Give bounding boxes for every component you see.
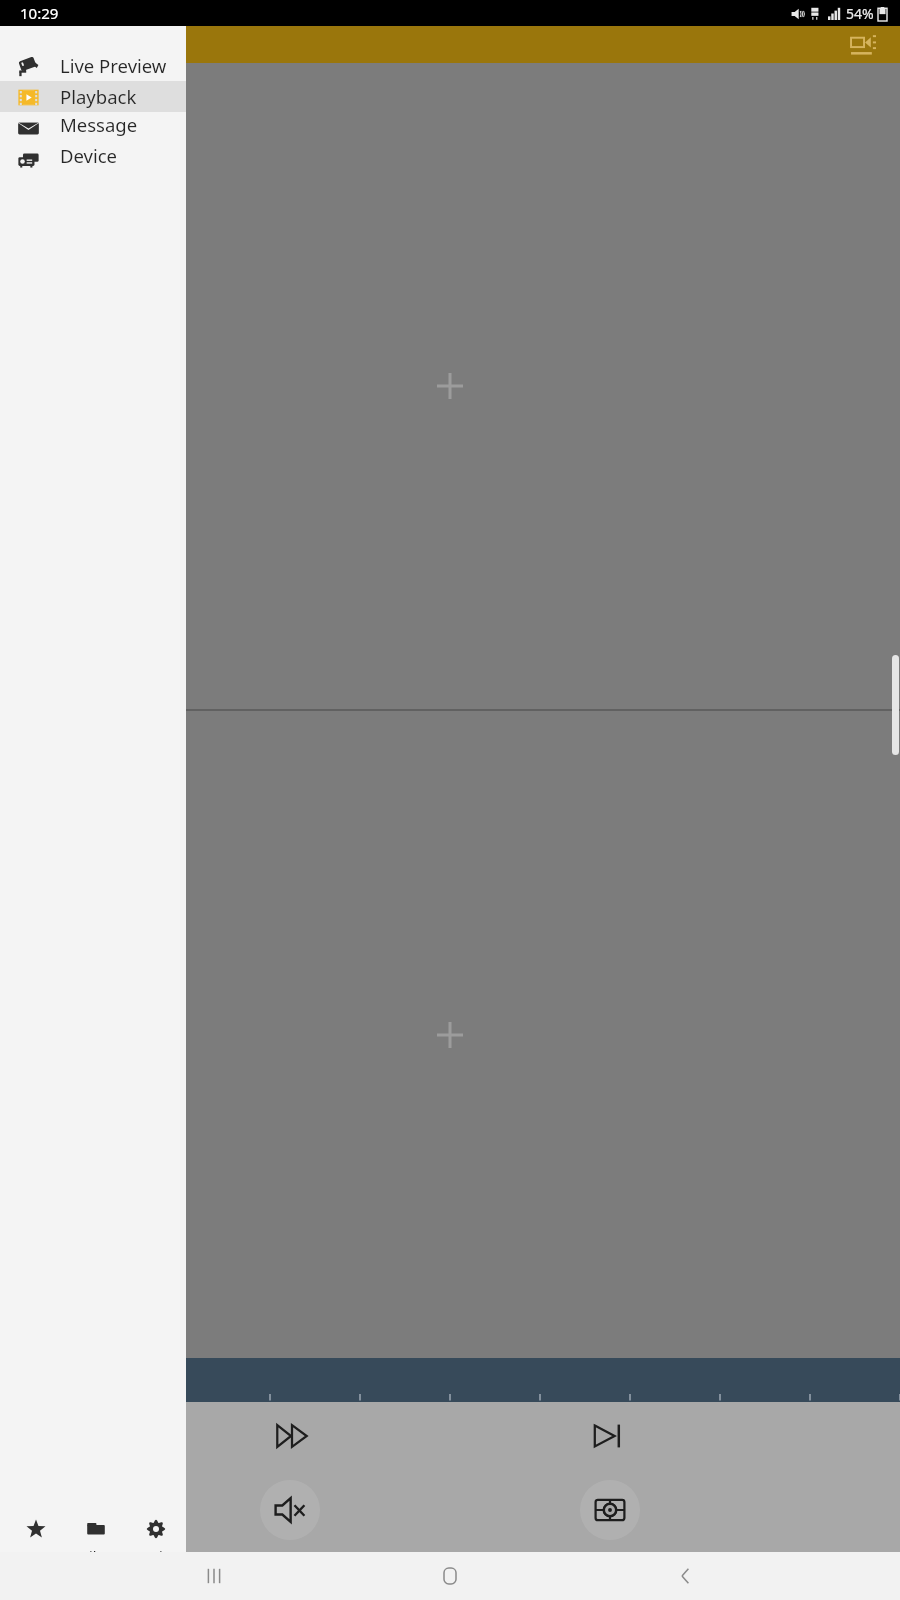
button[interactable]: Mute [260,1480,320,1540]
button[interactable]: Video settings [846,28,880,62]
button[interactable]: Favor... [6,1514,66,1570]
staticText: Playback [60,84,137,109]
staticText: 10:29 [20,3,59,23]
staticText: 54% [846,4,874,23]
button[interactable]: Fast forward [268,1412,316,1460]
button[interactable]: Recent apps [192,1554,236,1598]
button[interactable]: Files [66,1514,126,1570]
staticText: Setting [132,1546,181,1566]
button[interactable]: Message Center [0,112,186,143]
staticText: Live Preview [60,53,167,78]
button[interactable]: Live Preview [0,50,186,81]
button[interactable]: Device Manager [0,143,186,174]
button[interactable]: Digital zoom [580,1480,640,1540]
button[interactable]: Playback [0,81,186,112]
button[interactable]: Setting [126,1514,186,1570]
button[interactable]: Back [664,1554,708,1598]
staticText: Files [81,1546,112,1566]
staticText: Device Manager [60,143,186,174]
button[interactable]: Home [428,1554,472,1598]
staticText: Message Center [60,112,186,143]
button[interactable]: Next frame [584,1412,632,1460]
